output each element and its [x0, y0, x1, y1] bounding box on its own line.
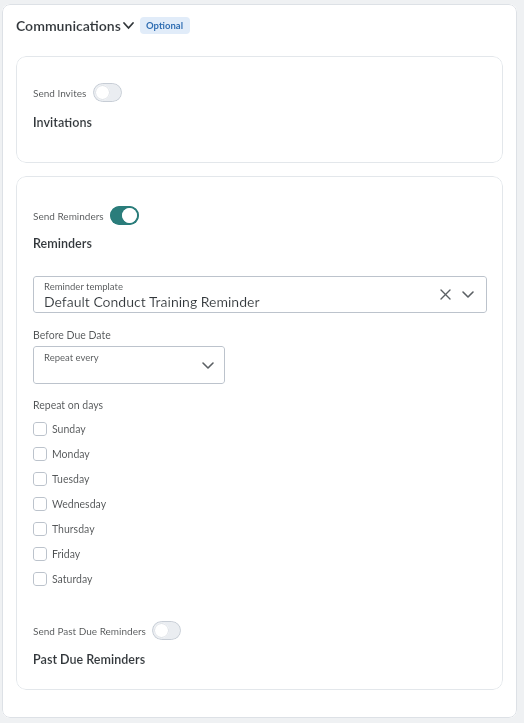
button[interactable]: Tuesday	[33, 472, 90, 486]
staticText: Default Conduct Training Reminder	[44, 293, 260, 310]
button[interactable]: Saturday	[33, 572, 93, 586]
staticText: Send Reminders	[33, 210, 104, 222]
staticText: Friday	[52, 548, 81, 561]
button[interactable]: Sunday	[33, 422, 86, 436]
button[interactable]: Wednesday	[33, 497, 107, 511]
button[interactable]	[93, 83, 122, 102]
staticText: Send Invites	[33, 87, 87, 99]
staticText: Wednesday	[52, 498, 107, 511]
staticText: Sunday	[52, 423, 86, 436]
staticText: Tuesday	[52, 473, 90, 486]
button[interactable]	[110, 206, 139, 225]
staticText: Reminders	[33, 236, 92, 251]
button[interactable]: Send Invites	[33, 83, 122, 102]
button[interactable]: Thursday	[33, 522, 95, 536]
button[interactable]: Reminder template	[33, 276, 487, 313]
staticText: Invitations	[33, 115, 92, 130]
staticText: Past Due Reminders	[33, 652, 146, 667]
staticText: Thursday	[52, 523, 95, 536]
staticText: Optional	[146, 20, 184, 31]
staticText: Reminder template	[44, 281, 123, 292]
staticText: Communications	[16, 17, 121, 34]
button[interactable]: Send Reminders	[33, 206, 139, 225]
button[interactable]: Send Past Due Reminders	[33, 621, 181, 640]
staticText: Repeat on days	[33, 399, 104, 412]
button[interactable]	[152, 621, 181, 640]
button[interactable]: Friday	[33, 547, 81, 561]
staticText: Before Due Date	[33, 329, 111, 342]
staticText: Saturday	[52, 573, 93, 586]
button[interactable]: Repeat every	[33, 346, 225, 384]
button[interactable]: Communications	[16, 17, 190, 34]
button[interactable]: Monday	[33, 447, 90, 461]
staticText: Send Past Due Reminders	[33, 625, 146, 637]
button[interactable]: Optional	[146, 20, 184, 31]
staticText: Repeat every	[44, 352, 99, 363]
staticText: Monday	[52, 448, 90, 461]
